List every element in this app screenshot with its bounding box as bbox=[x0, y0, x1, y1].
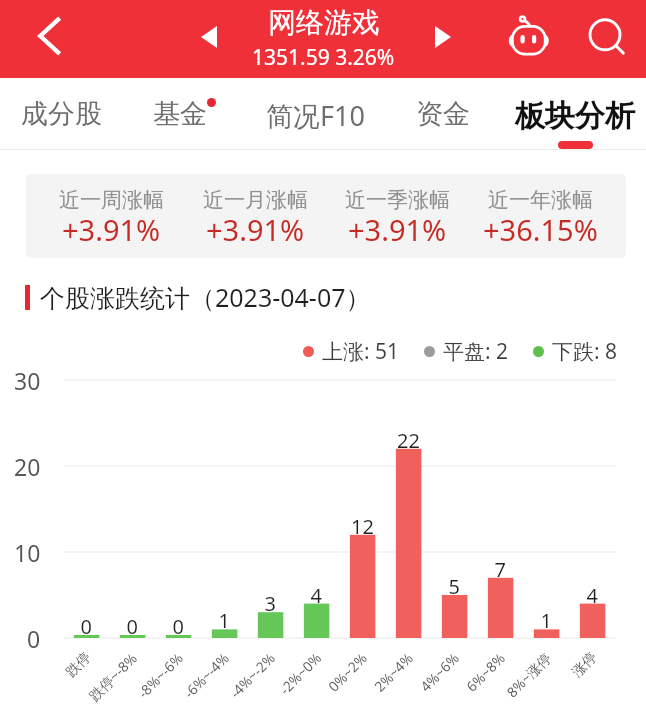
staticText: 平盘: 2 bbox=[443, 337, 509, 366]
staticText: +36.15% bbox=[483, 210, 598, 249]
staticText: 资金 bbox=[416, 97, 470, 131]
button[interactable]: AI assistant bbox=[502, 8, 554, 60]
staticText: 个股涨跌统计（2023-04-07） bbox=[40, 280, 371, 314]
staticText: 网络游戏 bbox=[268, 5, 380, 40]
button[interactable]: 成分股 bbox=[0, 78, 131, 150]
staticText: 1351.59 3.26% bbox=[252, 43, 395, 72]
staticText: 下跌: 8 bbox=[552, 337, 618, 366]
staticText: +3.91% bbox=[348, 210, 447, 249]
staticText: 简况F10 bbox=[266, 97, 365, 134]
button[interactable]: 基金 bbox=[110, 78, 250, 150]
button[interactable]: Previous sector bbox=[187, 15, 231, 59]
button[interactable]: 板块分析 bbox=[505, 78, 645, 150]
staticText: 上涨: 51 bbox=[322, 337, 400, 366]
staticText: 板块分析 bbox=[515, 97, 635, 135]
staticText: +3.91% bbox=[206, 210, 305, 249]
button[interactable]: Back bbox=[24, 10, 76, 62]
staticText: 近一月涨幅 bbox=[203, 187, 308, 213]
button[interactable]: Next sector bbox=[421, 15, 465, 59]
button[interactable]: 简况F10 bbox=[245, 78, 385, 150]
staticText: +3.91% bbox=[62, 210, 161, 249]
staticText: 近一年涨幅 bbox=[488, 187, 593, 213]
staticText: 基金 bbox=[153, 97, 207, 131]
button[interactable]: 资金 bbox=[373, 78, 513, 150]
staticText: 近一季涨幅 bbox=[345, 187, 450, 213]
button[interactable]: Search bbox=[579, 13, 631, 65]
staticText: 成分股 bbox=[21, 97, 102, 131]
staticText: 近一周涨幅 bbox=[59, 187, 164, 213]
